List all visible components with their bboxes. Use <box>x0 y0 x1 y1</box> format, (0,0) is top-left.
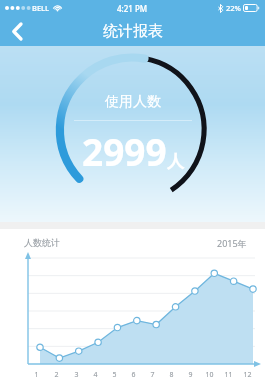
staticText: 10 <box>205 370 214 380</box>
staticText: 统计报表 <box>103 22 163 41</box>
staticText: 1 <box>34 370 39 380</box>
staticText: 2 <box>54 370 59 380</box>
staticText: 8 <box>169 370 174 380</box>
staticText: 4 <box>93 370 98 380</box>
staticText: 6 <box>131 370 136 380</box>
staticText: BELL <box>32 3 50 13</box>
staticText: 4:21 PM <box>117 3 148 14</box>
staticText: 2015年 <box>217 237 247 249</box>
staticText: 3 <box>74 370 79 380</box>
staticText: 人 <box>167 151 184 172</box>
staticText: 11 <box>224 370 233 380</box>
button[interactable]: Back <box>0 16 34 46</box>
staticText: 使用人数 <box>105 93 161 111</box>
staticText: 22% <box>226 3 241 13</box>
staticText: 7 <box>150 370 155 380</box>
staticText: 人数统计 <box>24 237 60 248</box>
staticText: 2999 <box>82 126 167 176</box>
staticText: 9 <box>188 370 193 380</box>
staticText: 12 <box>243 370 252 380</box>
staticText: 5 <box>112 370 117 380</box>
